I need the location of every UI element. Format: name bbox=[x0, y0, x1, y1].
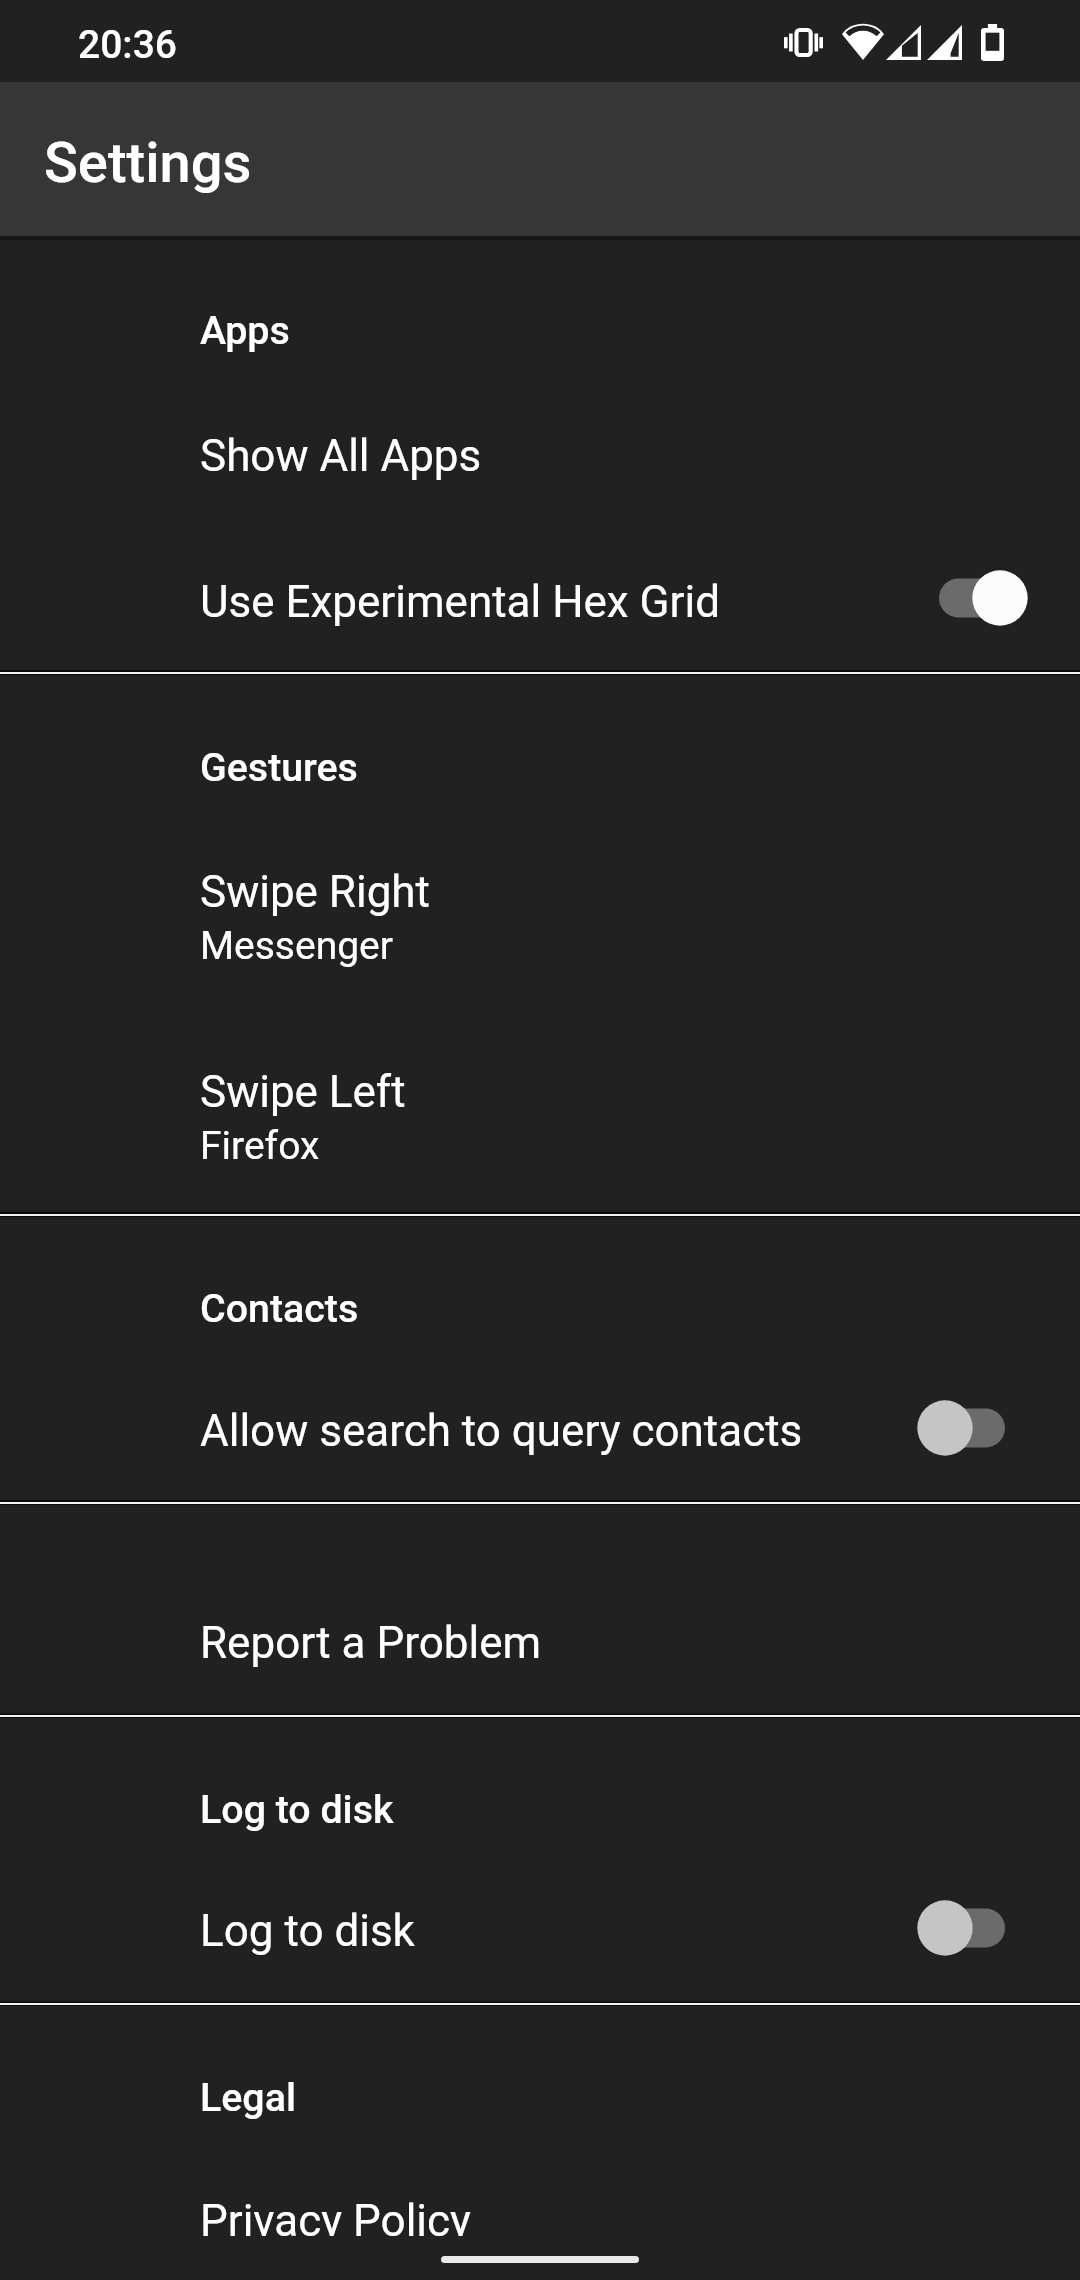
staticText: Legal bbox=[200, 2075, 296, 2121]
staticText: Settings bbox=[44, 130, 252, 196]
other: Wi-Fi bbox=[842, 24, 884, 60]
staticText: 20:36 bbox=[78, 22, 178, 68]
button[interactable]: Log to disk bbox=[0, 1857, 1080, 2003]
staticText: Contacts bbox=[200, 1286, 359, 1332]
button[interactable]: Report a Problem bbox=[0, 1578, 1080, 1715]
button[interactable]: Use Experimental Hex Grid bbox=[0, 528, 1080, 672]
staticText: Allow search to query contacts bbox=[200, 1405, 803, 1457]
staticText: Firefox bbox=[200, 1123, 320, 1169]
button[interactable]: Switch on bbox=[890, 550, 1050, 646]
staticText: Log to disk bbox=[200, 1787, 394, 1833]
staticText: Swipe Left bbox=[200, 1066, 406, 1118]
staticText: Report a Problem bbox=[200, 1617, 542, 1669]
staticText: Swipe Right bbox=[200, 866, 430, 918]
button[interactable]: Switch off bbox=[890, 1380, 1050, 1476]
staticText: Messenger bbox=[200, 923, 394, 969]
button[interactable]: Allow search to query contacts bbox=[0, 1357, 1080, 1502]
button[interactable]: Swipe Left bbox=[0, 1033, 1080, 1203]
staticText: Log to disk bbox=[200, 1905, 415, 1957]
staticText: Gestures bbox=[200, 745, 358, 791]
other: Battery bbox=[981, 24, 1004, 61]
staticText: Show All Apps bbox=[200, 430, 482, 482]
staticText: Use Experimental Hex Grid bbox=[200, 576, 720, 628]
staticText: Privacy Policy bbox=[200, 2195, 471, 2247]
button[interactable]: Switch off bbox=[890, 1880, 1050, 1976]
staticText: Apps bbox=[200, 308, 290, 354]
other: Mobile signal bbox=[886, 25, 921, 60]
button[interactable]: Swipe Right bbox=[0, 833, 1080, 1003]
button[interactable]: Show All Apps bbox=[0, 382, 1080, 528]
other: Mobile signal bbox=[927, 25, 962, 60]
other: Ringer set to vibrate bbox=[784, 28, 823, 57]
button[interactable]: Privacy Policy bbox=[0, 2146, 1080, 2236]
